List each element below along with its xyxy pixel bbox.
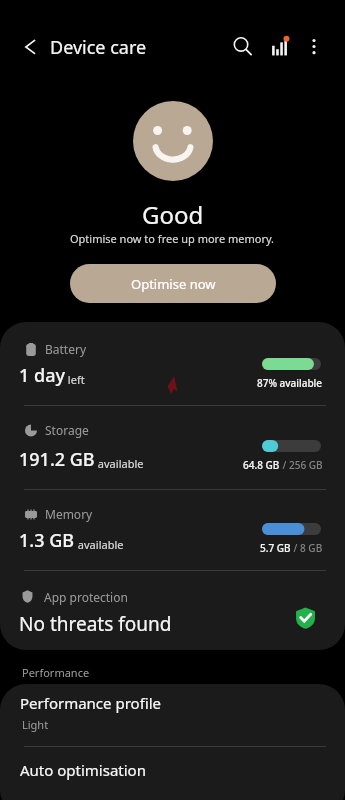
staticText: Light bbox=[22, 717, 49, 732]
staticText: / 256 GB bbox=[280, 458, 323, 472]
staticText: Optimise now bbox=[131, 275, 216, 293]
button[interactable]: Optimise now bbox=[70, 264, 276, 303]
staticText: Battery bbox=[45, 341, 87, 357]
staticText: Storage bbox=[45, 422, 89, 438]
staticText: available bbox=[75, 537, 124, 552]
staticText: 5.7 GB bbox=[260, 541, 291, 555]
button[interactable]: Battery bbox=[0, 322, 345, 405]
staticText: 87% available bbox=[257, 376, 323, 390]
staticText: App protection bbox=[44, 589, 128, 605]
button[interactable]: Search bbox=[228, 31, 258, 61]
staticText: available bbox=[95, 456, 144, 471]
staticText: 1 day bbox=[19, 363, 65, 388]
button[interactable]: Auto optimisation bbox=[0, 747, 345, 800]
staticText: Optimise now to free up more memory. bbox=[70, 231, 275, 246]
button[interactable]: Storage bbox=[0, 406, 345, 489]
button[interactable]: App protection bbox=[0, 571, 345, 650]
staticText: Auto optimisation bbox=[20, 760, 146, 780]
button[interactable]: More options bbox=[299, 31, 328, 60]
staticText: 191.2 GB bbox=[19, 447, 95, 472]
staticText: 1.3 GB bbox=[19, 528, 75, 553]
staticText: Performance bbox=[22, 665, 90, 680]
staticText: Device care bbox=[50, 35, 147, 60]
staticText: Good bbox=[142, 198, 204, 231]
staticText: left bbox=[65, 372, 85, 387]
button[interactable]: Back bbox=[14, 31, 46, 63]
staticText: Performance profile bbox=[20, 693, 161, 713]
staticText: 64.8 GB bbox=[243, 458, 280, 472]
staticText: / 8 GB bbox=[291, 541, 323, 555]
button[interactable]: Usage statistics bbox=[265, 33, 295, 63]
staticText: No threats found bbox=[19, 611, 172, 637]
button[interactable]: Memory bbox=[0, 490, 345, 570]
button[interactable]: Performance profile bbox=[0, 684, 345, 746]
staticText: Memory bbox=[45, 506, 93, 522]
